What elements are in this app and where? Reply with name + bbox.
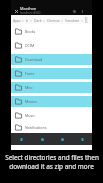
- button[interactable]: DCIM: [11, 38, 92, 52]
- button[interactable]: DG: [85, 16, 90, 24]
- staticText: Select directories and files then: [5, 153, 99, 162]
- button[interactable]: Movies: [11, 94, 92, 108]
- button[interactable]: Recents: [52, 133, 72, 145]
- button[interactable]: Music: [11, 108, 92, 122]
- button[interactable]: Simulant: [65, 18, 85, 23]
- button[interactable]: Download: [11, 52, 92, 66]
- button[interactable]: Menu: [72, 133, 92, 145]
- staticText: Maxthon: [20, 6, 37, 11]
- button[interactable]: Dark: [34, 18, 47, 23]
- staticText: Download: [25, 57, 43, 62]
- button[interactable]: Account: [71, 8, 77, 14]
- button[interactable]: Close tab: [13, 8, 19, 14]
- button[interactable]: b: [26, 18, 34, 23]
- staticText: Apps: [13, 18, 21, 23]
- button[interactable]: Apps: [13, 18, 26, 23]
- staticText: Movies: [25, 99, 37, 104]
- button[interactable]: Notifications: [11, 122, 92, 133]
- staticText: Misc: [25, 85, 33, 90]
- staticText: DCIM: [25, 43, 35, 48]
- staticText: Notifications: [25, 125, 47, 130]
- staticText: Music: [25, 113, 35, 118]
- staticText: Simulant: [65, 18, 80, 23]
- button[interactable]: Chrome: [47, 18, 65, 23]
- button[interactable]: More options: [79, 8, 85, 14]
- staticText: download it as zip and more: [9, 162, 94, 171]
- staticText: DG: [85, 16, 88, 24]
- button[interactable]: Home: [32, 133, 52, 145]
- staticText: Dark: [34, 18, 42, 23]
- button[interactable]: Books: [11, 24, 92, 38]
- staticText: localhost:8080: [20, 11, 41, 15]
- staticText: Books: [25, 29, 36, 34]
- staticText: Chrome: [47, 18, 60, 23]
- staticText: Fonts: [25, 71, 35, 76]
- staticText: b: [26, 18, 29, 23]
- button[interactable]: Misc: [11, 80, 92, 94]
- button[interactable]: Fonts: [11, 66, 92, 80]
- button[interactable]: Back: [11, 133, 32, 145]
